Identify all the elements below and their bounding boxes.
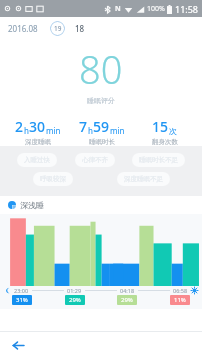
button[interactable]: 睡眠时长不足: [132, 153, 185, 167]
staticText: 次: [169, 126, 177, 136]
button[interactable]: 29%: [117, 295, 137, 305]
staticText: 心律不齐: [82, 156, 108, 164]
staticText: 18: [75, 23, 85, 34]
staticText: 11%: [174, 296, 186, 304]
staticText: 30: [29, 117, 46, 136]
staticText: 2016.08: [8, 23, 38, 34]
staticText: 2: [15, 117, 24, 136]
button[interactable]: 31%: [12, 295, 32, 305]
staticText: 04:18: [120, 287, 135, 294]
staticText: 23:00: [14, 287, 29, 294]
staticText: 翻身次数: [152, 138, 178, 146]
button[interactable]: 深度睡眠不足: [117, 172, 170, 186]
button[interactable]: 入睡过快: [17, 153, 57, 167]
button[interactable]: 15: [133, 117, 196, 146]
staticText: N: [115, 4, 121, 14]
button[interactable]: Back: [8, 335, 28, 355]
staticText: 29%: [121, 296, 133, 304]
staticText: 31%: [16, 296, 28, 304]
staticText: 11:58: [175, 3, 199, 15]
button[interactable]: 呼吸较深: [33, 172, 73, 186]
staticText: 06:58: [173, 287, 188, 294]
staticText: h: [88, 125, 93, 136]
button[interactable]: 29%: [65, 295, 85, 305]
staticText: 01:29: [67, 287, 82, 294]
staticText: 深度睡眠: [25, 138, 51, 146]
staticText: h: [24, 125, 29, 136]
button[interactable]: 11%: [170, 295, 190, 305]
staticText: 100%: [147, 4, 165, 14]
button[interactable]: 18: [75, 23, 85, 34]
staticText: 15: [152, 117, 169, 136]
staticText: 睡眠评分: [87, 96, 115, 105]
staticText: 7: [79, 117, 88, 136]
staticText: 19: [54, 24, 62, 33]
staticText: 深浅睡: [20, 200, 44, 210]
staticText: min: [46, 125, 61, 136]
staticText: 80: [79, 43, 123, 95]
button[interactable]: 7: [70, 117, 133, 146]
staticText: 59: [93, 117, 110, 136]
staticText: 睡眠时长不足: [139, 156, 178, 164]
button[interactable]: 19: [50, 21, 65, 36]
staticText: 呼吸较深: [40, 175, 66, 183]
staticText: 入睡过快: [24, 156, 50, 164]
staticText: 睡眠时长: [89, 138, 115, 146]
staticText: 深度睡眠不足: [124, 175, 163, 183]
staticText: min: [110, 125, 125, 136]
staticText: 29%: [69, 296, 81, 304]
button[interactable]: 心律不齐: [75, 153, 115, 167]
button[interactable]: 2: [6, 117, 70, 146]
